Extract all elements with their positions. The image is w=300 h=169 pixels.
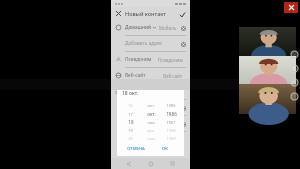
button[interactable]: Участник 2 — [239, 56, 296, 84]
staticText: Веб-сайт — [163, 73, 183, 79]
button[interactable]: День рождения — [111, 84, 190, 99]
button[interactable]: Добавить адрес — [111, 36, 190, 51]
button[interactable]: Участник 3 — [239, 84, 296, 114]
button[interactable]: Участники — [290, 78, 299, 87]
button[interactable]: Псевдоним — [111, 52, 190, 67]
staticText: 1985 — [166, 103, 176, 108]
button[interactable]: ОТМЕНА — [121, 142, 150, 156]
staticText: 20 — [128, 136, 133, 141]
button[interactable]: Камера — [290, 64, 299, 73]
button[interactable]: 1985 — [162, 101, 180, 110]
staticText: ОТМЕНА — [127, 146, 145, 152]
button[interactable]: ноя. — [140, 118, 162, 126]
button[interactable]: 17 — [121, 110, 140, 118]
staticText: Псевдоним — [125, 56, 152, 63]
staticText: ноя. — [147, 120, 156, 125]
button[interactable]: Веб-сайт — [111, 68, 190, 83]
staticText: Новый контакт — [125, 10, 166, 17]
button[interactable]: Удалить — [180, 121, 186, 127]
button[interactable]: 16 — [121, 101, 140, 110]
staticText: 18 — [128, 119, 134, 125]
button[interactable]: Недавние приложения — [168, 159, 177, 168]
button[interactable]: 18 окт. 1986 г. — [111, 100, 190, 115]
staticText: 1988 — [166, 128, 176, 133]
button[interactable]: 1988 — [162, 126, 180, 134]
staticText: 18 окт. — [122, 90, 139, 97]
button[interactable]: 20 — [121, 134, 140, 142]
button[interactable]: Закрыть — [115, 10, 122, 17]
staticText: Дата — [166, 121, 177, 127]
button[interactable]: Удалить — [180, 105, 186, 111]
button[interactable]: Закрыть — [284, 2, 298, 13]
staticText: Добавить адрес — [125, 40, 163, 47]
button[interactable]: 1987 — [162, 118, 180, 126]
staticText: 18 окт. 1986 г. — [125, 104, 158, 111]
button[interactable]: 1986 — [162, 110, 180, 118]
staticText: окт. — [147, 111, 156, 117]
staticText: 1986 — [166, 111, 177, 117]
button[interactable]: Юбилей — [111, 116, 190, 131]
button[interactable]: Сохранить — [178, 10, 186, 18]
staticText: 1989 — [166, 136, 176, 141]
button[interactable]: Удалить — [180, 41, 186, 47]
button[interactable]: Домашний — [111, 20, 190, 35]
staticText: янв. — [147, 136, 156, 141]
staticText: дек. — [147, 128, 155, 133]
staticText: Псевдоним — [158, 57, 183, 63]
button[interactable]: Закрыть — [111, 7, 190, 20]
button[interactable]: Удалить — [180, 25, 186, 31]
button[interactable]: янв. — [140, 134, 162, 142]
staticText: Веб-сайт — [125, 72, 146, 79]
staticText: Юбилей — [125, 120, 145, 127]
button[interactable]: Главный экран — [146, 159, 155, 168]
button[interactable]: окт. — [140, 110, 162, 118]
button[interactable]: 18 — [121, 118, 140, 126]
staticText: Мобиль — [159, 25, 177, 31]
button[interactable]: Назад — [124, 159, 133, 168]
staticText: Домашний — [125, 24, 151, 31]
button[interactable]: Микрофон — [290, 50, 299, 59]
staticText: 19 — [128, 128, 133, 133]
staticText: 17 — [128, 112, 133, 117]
button[interactable]: Ещё — [290, 92, 299, 101]
staticText: сен. — [147, 103, 155, 108]
staticText: День рождения — [125, 88, 162, 95]
button[interactable]: ОК — [150, 142, 180, 156]
button[interactable]: сен. — [140, 101, 162, 110]
button[interactable]: 1989 — [162, 134, 180, 142]
button[interactable]: 19 — [121, 126, 140, 134]
button[interactable]: Участник 1 — [239, 27, 296, 56]
staticText: 1987 — [166, 120, 176, 125]
button[interactable]: дек. — [140, 126, 162, 134]
staticText: 16 — [128, 103, 133, 108]
staticText: ОК — [162, 146, 168, 152]
